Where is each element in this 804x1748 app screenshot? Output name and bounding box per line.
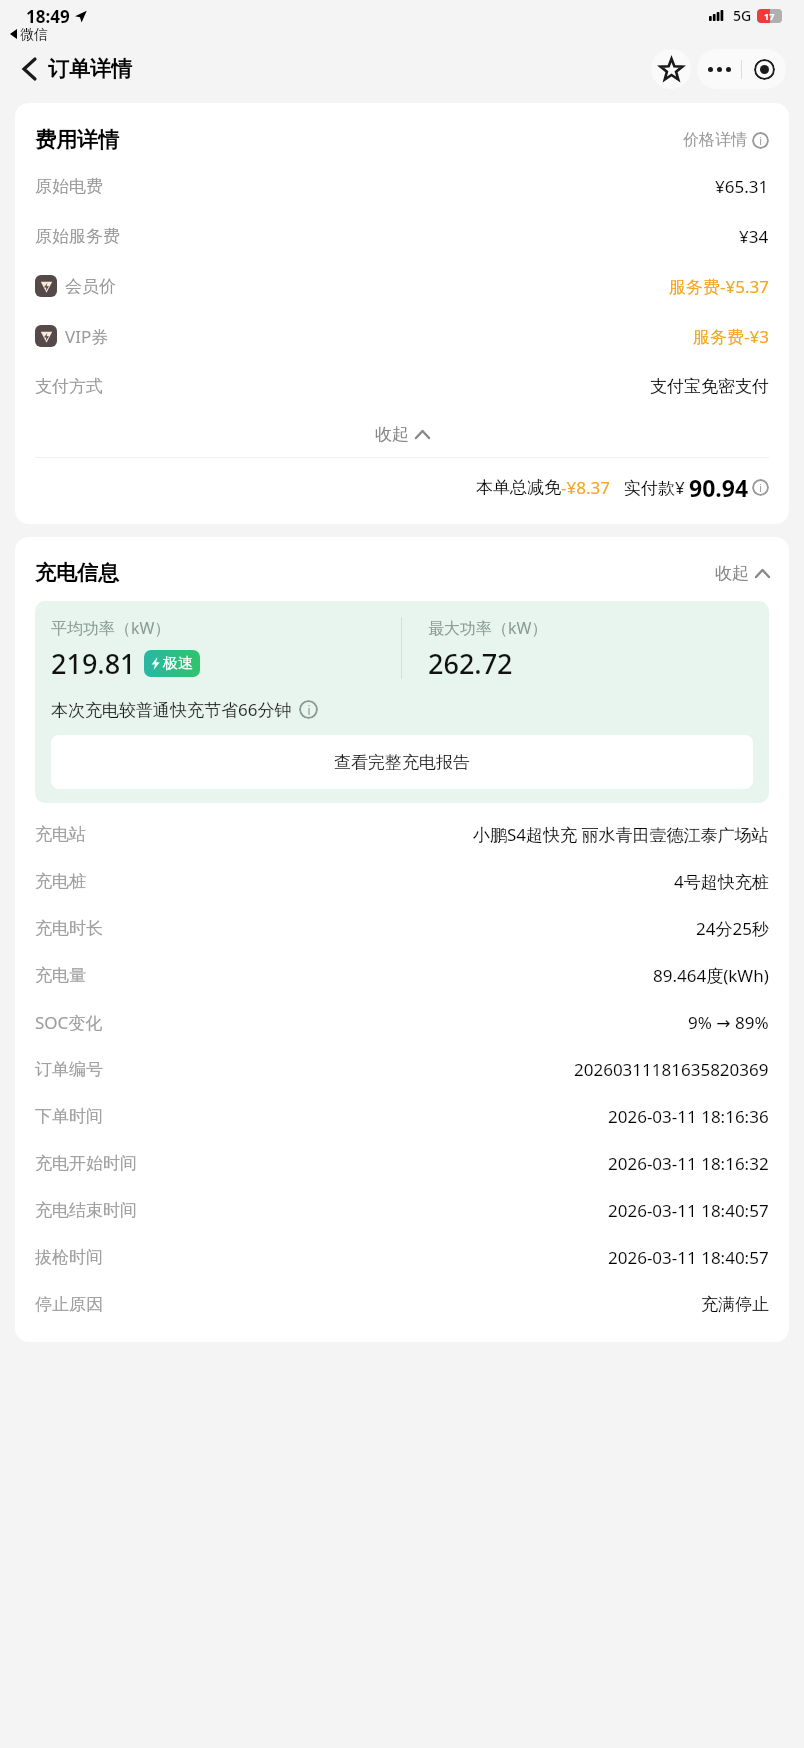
button[interactable]: Favorite: [651, 49, 691, 89]
staticText: 原始电费: [35, 176, 103, 197]
staticText: 充电开始时间: [35, 1153, 137, 1174]
staticText: 原始服务费: [35, 226, 120, 247]
staticText: 2026-03-11 18:40:57: [608, 1199, 769, 1222]
staticText: 充电站: [35, 824, 86, 845]
staticText: 支付宝免密支付: [650, 376, 769, 397]
staticText: 24分25秒: [696, 917, 769, 940]
staticText: 262.72: [428, 645, 513, 682]
button[interactable]: 支付方式: [35, 361, 769, 411]
staticText: ¥34: [739, 225, 769, 248]
staticText: 会员价: [65, 276, 116, 297]
staticText: 小鹏S4超快充 丽水青田壹德江泰广场站: [473, 823, 769, 846]
staticText: 2026-03-11 18:16:32: [608, 1152, 769, 1175]
staticText: 服务费-¥3: [693, 325, 769, 348]
staticText: 4号超快充桩: [674, 870, 769, 893]
button[interactable]: 查看完整充电报告: [51, 735, 753, 789]
staticText: i: [307, 702, 311, 718]
staticText: 充满停止: [701, 1294, 769, 1315]
button[interactable]: Close: [742, 49, 786, 89]
other: Back: [12, 52, 46, 86]
staticText: 收起: [375, 424, 409, 445]
staticText: 实付款¥: [624, 476, 685, 499]
staticText: 充电结束时间: [35, 1200, 137, 1221]
staticText: -¥8.37: [561, 476, 610, 499]
staticText: VIP券: [65, 325, 109, 348]
button[interactable]: More options: [697, 49, 741, 89]
staticText: 9% → 89%: [688, 1011, 769, 1034]
staticText: 费用详情: [35, 127, 119, 153]
staticText: 价格详情: [683, 130, 747, 150]
staticText: 收起: [715, 563, 749, 584]
staticText: 下单时间: [35, 1106, 103, 1127]
staticText: i: [759, 481, 762, 495]
button[interactable]: Back: [12, 52, 132, 86]
staticText: 2026-03-11 18:16:36: [608, 1105, 769, 1128]
staticText: 支付方式: [35, 376, 103, 397]
staticText: 本次充电较普通快充节省66分钟: [51, 698, 292, 721]
staticText: 服务费-¥5.37: [669, 275, 769, 298]
staticText: 充电信息: [35, 560, 119, 586]
button[interactable]: 原始服务费: [35, 211, 769, 261]
staticText: 微信: [20, 26, 48, 42]
staticText: 订单编号: [35, 1059, 103, 1080]
staticText: 17: [764, 10, 775, 22]
button[interactable]: 会员价: [35, 261, 769, 311]
staticText: 充电量: [35, 965, 86, 986]
staticText: 订单详情: [48, 56, 132, 82]
staticText: 本单总减免: [476, 477, 561, 498]
staticText: 停止原因: [35, 1294, 103, 1315]
staticText: 平均功率（kW）: [51, 617, 171, 639]
staticText: 拔枪时间: [35, 1247, 103, 1268]
button[interactable]: VIP券: [35, 311, 769, 361]
staticText: ¥65.31: [715, 175, 769, 198]
staticText: 20260311181635820369: [574, 1058, 769, 1081]
staticText: 查看完整充电报告: [334, 752, 470, 773]
staticText: i: [759, 134, 762, 148]
button[interactable]: 收起: [35, 411, 769, 457]
staticText: 最大功率（kW）: [428, 617, 548, 639]
staticText: 90.94: [689, 472, 749, 503]
staticText: 18:49: [26, 5, 70, 28]
button[interactable]: 收起: [715, 563, 769, 584]
staticText: 充电桩: [35, 871, 86, 892]
staticText: 5G: [733, 6, 752, 25]
button[interactable]: 价格详情: [683, 130, 769, 150]
staticText: SOC变化: [35, 1011, 103, 1034]
staticText: 极速: [163, 654, 193, 673]
staticText: 89.464度(kWh): [653, 964, 769, 987]
staticText: 2026-03-11 18:40:57: [608, 1246, 769, 1269]
button[interactable]: 原始电费: [35, 161, 769, 211]
staticText: 219.81: [51, 645, 136, 682]
staticText: 充电时长: [35, 918, 103, 939]
